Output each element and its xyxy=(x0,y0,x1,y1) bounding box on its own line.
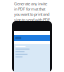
staticText: Generate any invite in PDF format that y… xyxy=(14,1,50,28)
